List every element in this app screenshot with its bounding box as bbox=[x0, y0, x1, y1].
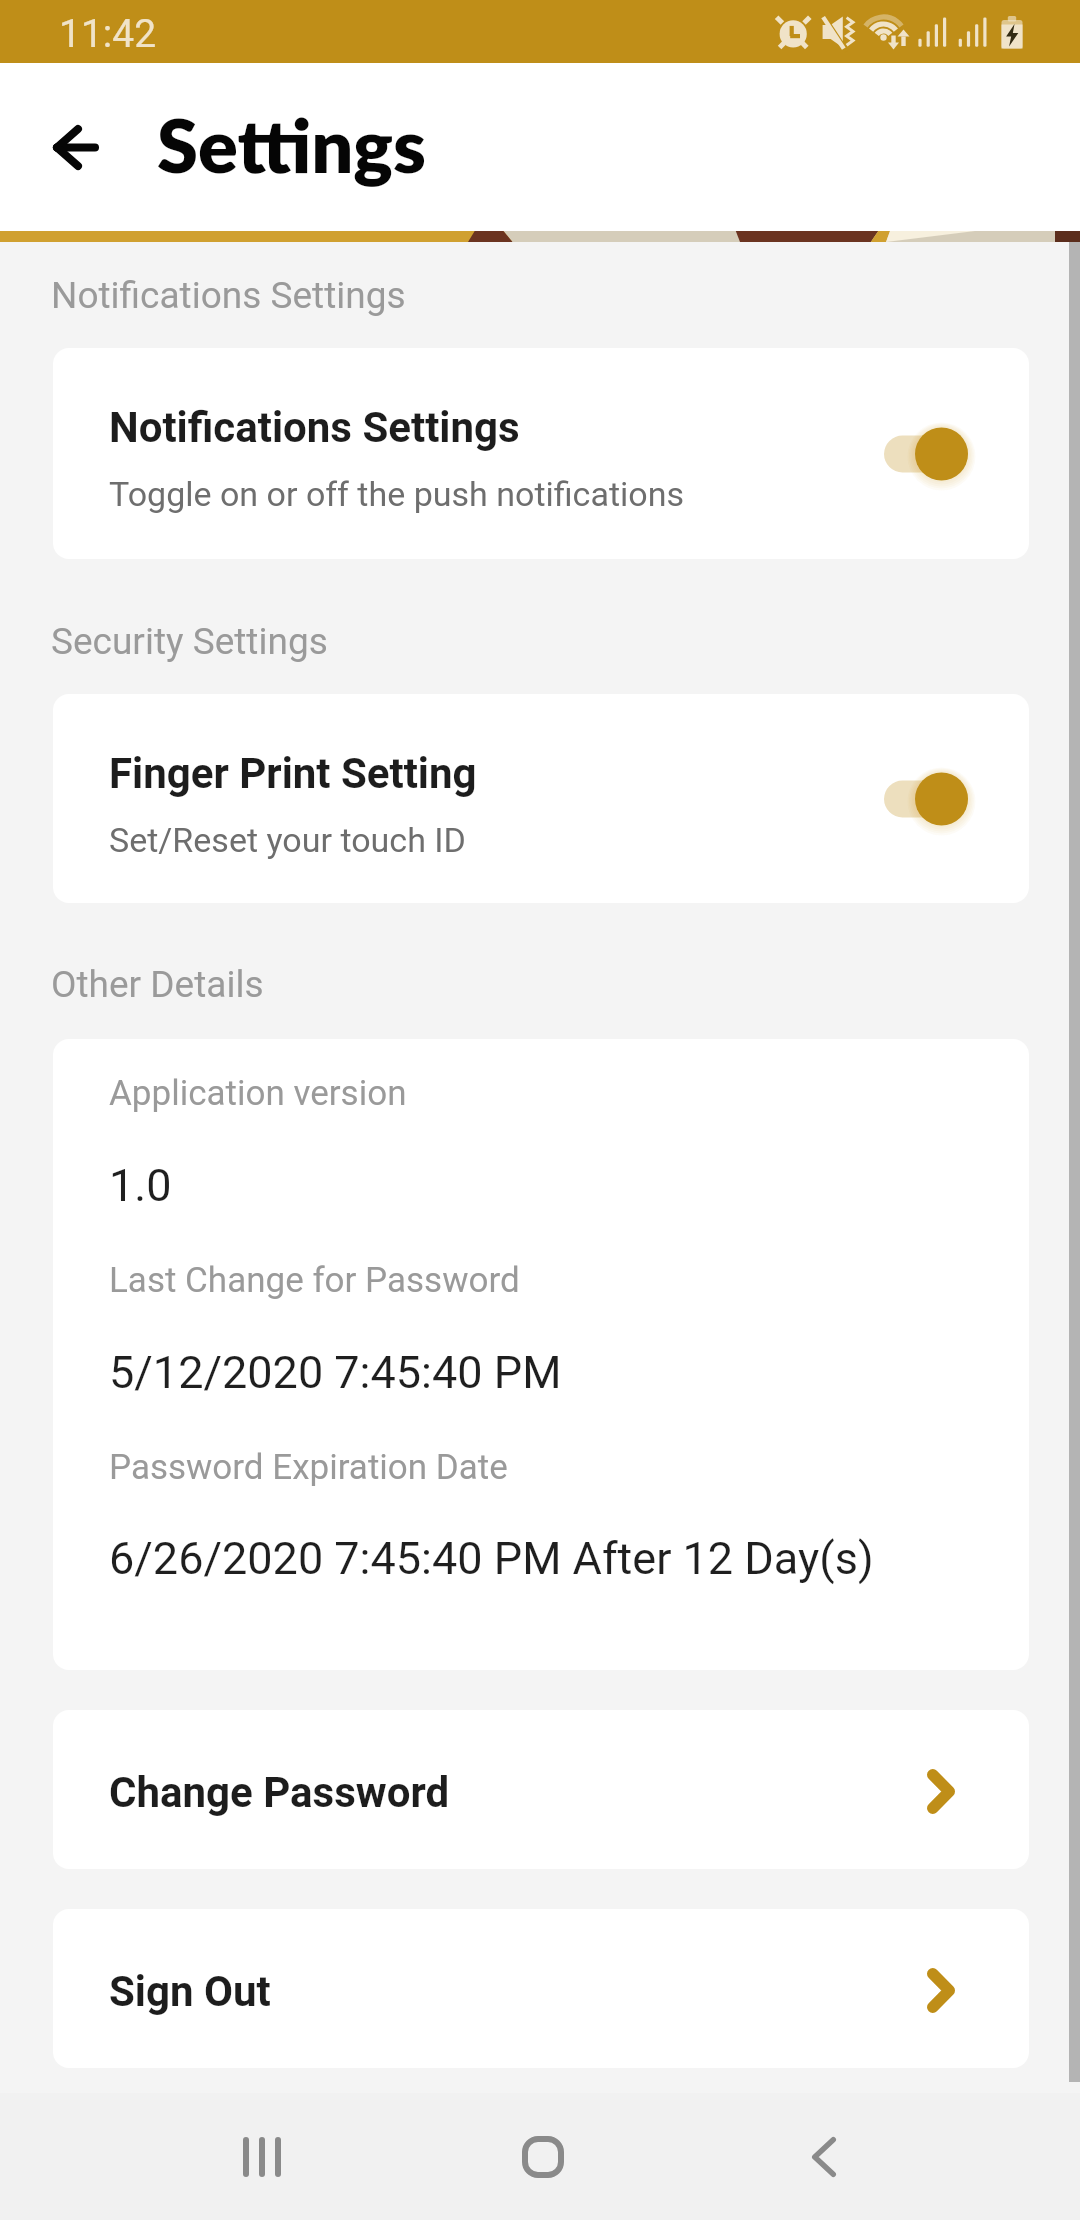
staticText: Change Password bbox=[109, 1768, 450, 1817]
button[interactable]: Back bbox=[33, 106, 119, 196]
staticText: Last Change for Password bbox=[109, 1260, 520, 1301]
staticText: Application version bbox=[109, 1073, 407, 1114]
button[interactable]: Back bbox=[764, 2093, 884, 2220]
button[interactable]: Change Password bbox=[53, 1710, 1029, 1869]
staticText: Other Details bbox=[51, 963, 264, 1006]
staticText: 6/26/2020 7:45:40 PM After 12 Day(s) bbox=[109, 1532, 874, 1585]
staticText: Sign Out bbox=[109, 1967, 271, 2016]
button[interactable]: Sign Out bbox=[53, 1909, 1029, 2068]
button[interactable]: Finger Print Setting bbox=[53, 694, 1029, 903]
staticText: 5/12/2020 7:45:40 PM bbox=[109, 1346, 562, 1399]
staticText: 1.0 bbox=[109, 1159, 172, 1212]
button[interactable]: Notifications Settings bbox=[53, 348, 1029, 559]
staticText: 11:42 bbox=[59, 11, 157, 57]
staticText: Security Settings bbox=[51, 620, 328, 663]
button[interactable]: Home bbox=[483, 2093, 603, 2220]
staticText: Toggle on or off the push notifications bbox=[109, 474, 685, 514]
staticText: Finger Print Setting bbox=[109, 749, 477, 798]
button[interactable]: Recent apps bbox=[205, 2093, 325, 2220]
staticText: Notifications Settings bbox=[51, 274, 406, 317]
staticText: Notifications Settings bbox=[109, 403, 520, 452]
staticText: Password Expiration Date bbox=[109, 1447, 508, 1488]
staticText: Set/Reset your touch ID bbox=[109, 820, 466, 860]
staticText: Settings bbox=[157, 100, 426, 189]
